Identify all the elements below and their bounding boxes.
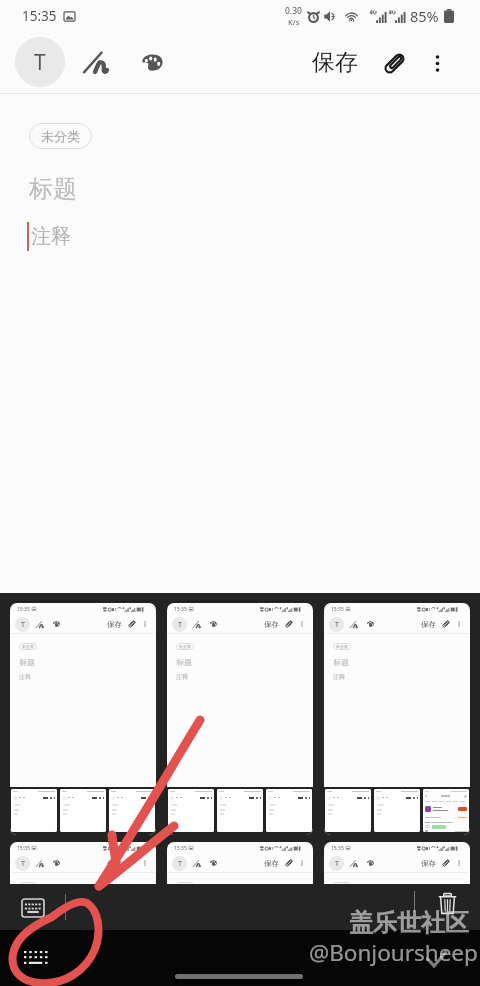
staticText: 85% xyxy=(410,6,439,26)
button[interactable]: 15:35 xyxy=(324,842,470,884)
staticText: 15:35 xyxy=(174,845,187,852)
button[interactable]: 15:35 xyxy=(10,842,156,884)
button[interactable]: Show keyboard xyxy=(21,943,51,973)
staticText: 保存 xyxy=(312,48,358,77)
button[interactable]: 保存 xyxy=(307,43,363,82)
staticText: 未分类 xyxy=(179,644,191,649)
button[interactable]: Text mode xyxy=(15,37,65,87)
staticText: 15:35 xyxy=(331,845,344,852)
staticText: K/s xyxy=(288,17,300,27)
staticText: 0.30 xyxy=(285,5,302,17)
staticText: 标题 xyxy=(19,657,35,667)
staticText: 15:35 xyxy=(174,606,187,613)
staticText: 保存 xyxy=(264,859,279,868)
staticText: 注释 xyxy=(19,673,31,681)
button[interactable]: Drawing palette xyxy=(132,42,172,82)
staticText: 未分类 xyxy=(336,644,348,649)
staticText: 注释 xyxy=(31,224,71,249)
button[interactable]: 15:35 xyxy=(167,603,313,835)
button[interactable]: 未分类 xyxy=(29,123,92,149)
button[interactable]: Delete xyxy=(434,890,461,917)
button[interactable]: Attach file xyxy=(375,44,413,82)
staticText: 标题 xyxy=(333,657,349,667)
staticText: T xyxy=(178,859,182,869)
button[interactable]: More options xyxy=(420,46,454,80)
staticText: 盖乐世社区 xyxy=(349,908,469,938)
staticText: 保存 xyxy=(107,620,122,629)
staticText: 未分类 xyxy=(22,883,34,884)
staticText: T xyxy=(178,620,182,630)
staticText: 未分类 xyxy=(22,644,34,649)
button[interactable]: 15:35 xyxy=(324,603,470,835)
staticText: 15:35 xyxy=(22,7,57,25)
staticText: 未分类 xyxy=(336,883,348,884)
staticText: @Bonjoursheep xyxy=(309,937,478,968)
staticText: T xyxy=(21,859,25,869)
staticText: T xyxy=(21,620,25,630)
staticText: 标题 xyxy=(176,657,192,667)
staticText: 15:35 xyxy=(17,606,30,613)
staticText: 注释 xyxy=(333,673,345,681)
staticText: T xyxy=(34,48,46,77)
staticText: 未分类 xyxy=(41,128,80,144)
staticText: 保存 xyxy=(264,620,279,629)
button[interactable]: Handwriting pen xyxy=(75,42,115,82)
staticText: 15:35 xyxy=(17,845,30,852)
staticText: 未分类 xyxy=(179,883,191,884)
staticText: 保存 xyxy=(421,620,436,629)
staticText: T xyxy=(335,620,339,630)
button[interactable]: 15:35 xyxy=(167,842,313,884)
staticText: 标题 xyxy=(29,174,77,204)
button[interactable]: 15:35 xyxy=(10,603,156,835)
staticText: 15:35 xyxy=(331,606,344,613)
staticText: 注释 xyxy=(176,673,188,681)
staticText: 保存 xyxy=(421,859,436,868)
staticText: 保存 xyxy=(107,859,122,868)
button[interactable]: Keyboard xyxy=(18,893,47,922)
staticText: T xyxy=(335,859,339,869)
